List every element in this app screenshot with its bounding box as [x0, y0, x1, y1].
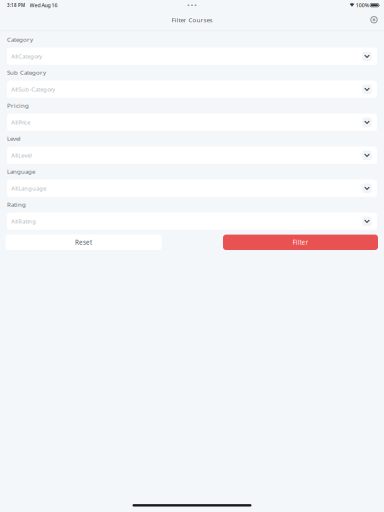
staticText: All Price [11, 118, 30, 126]
button[interactable]: Close [367, 13, 381, 27]
staticText: All Sub-Category [11, 85, 55, 93]
staticText: All Level [11, 151, 31, 159]
button[interactable]: All Price [7, 114, 377, 131]
staticText: Filter Courses [171, 16, 212, 24]
staticText: 100% [356, 2, 369, 9]
button[interactable]: All Rating [7, 213, 377, 230]
button[interactable]: All Sub-Category [7, 81, 377, 98]
staticText: Filter [292, 238, 308, 246]
staticText: Pricing [7, 101, 29, 110]
staticText: 3:18 PM [7, 2, 25, 8]
staticText: All Language [11, 184, 46, 192]
button[interactable]: All Category [7, 48, 377, 65]
staticText: Sub Category [7, 68, 46, 77]
button[interactable]: All Level [7, 147, 377, 164]
button[interactable]: Reset [6, 235, 162, 250]
staticText: Category [7, 35, 33, 44]
staticText: Reset [75, 238, 92, 246]
button[interactable]: All Language [7, 180, 377, 197]
button[interactable]: Filter [223, 235, 378, 250]
staticText: All Category [11, 52, 42, 60]
staticText: Level [7, 134, 21, 143]
staticText: Language [7, 167, 35, 176]
staticText: All Rating [11, 217, 36, 225]
staticText: Rating [7, 200, 26, 209]
staticText: Wed Aug 16 [30, 2, 58, 9]
